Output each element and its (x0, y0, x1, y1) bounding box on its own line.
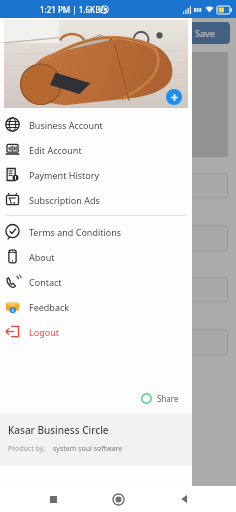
button[interactable]: Home (105, 486, 131, 512)
staticText: Contact (29, 276, 62, 288)
button[interactable]: Recent apps (40, 486, 66, 512)
staticText: Save (195, 27, 216, 39)
staticText: Logout (29, 326, 59, 338)
staticText: Share (157, 393, 179, 404)
staticText: Feedback (29, 301, 70, 313)
button[interactable]: Terms and Conditions (0, 219, 192, 244)
button[interactable]: Edit Account (0, 137, 192, 162)
button[interactable]: Feedback (0, 294, 192, 319)
staticText: Edit Account (29, 144, 82, 156)
button[interactable] (60, 329, 228, 355)
button[interactable]: Share (136, 390, 184, 407)
button[interactable]: Logout (0, 319, 192, 344)
button[interactable]: Payment History (0, 162, 192, 187)
button[interactable] (60, 173, 228, 199)
button[interactable]: Save (181, 22, 230, 44)
button[interactable]: Add (166, 89, 182, 105)
button[interactable] (60, 225, 228, 251)
staticText: Product by, (8, 444, 45, 454)
button[interactable]: Business Account (0, 112, 192, 137)
staticText: Business Account (29, 119, 103, 131)
staticText: Subscription Ads (29, 194, 100, 206)
staticText: system soul software (53, 444, 123, 454)
button[interactable]: Contact (0, 269, 192, 294)
button[interactable]: Back (171, 486, 197, 512)
staticText: Kasar Business Circle (8, 423, 109, 437)
button[interactable]: Subscription Ads (0, 187, 192, 212)
button[interactable]: About (0, 244, 192, 269)
staticText: 1:21 PM | 1.6KB/s (40, 4, 108, 15)
staticText: About (29, 251, 55, 263)
staticText: Payment History (29, 169, 100, 181)
staticText: Terms and Conditions (29, 226, 122, 238)
button[interactable] (60, 277, 228, 303)
